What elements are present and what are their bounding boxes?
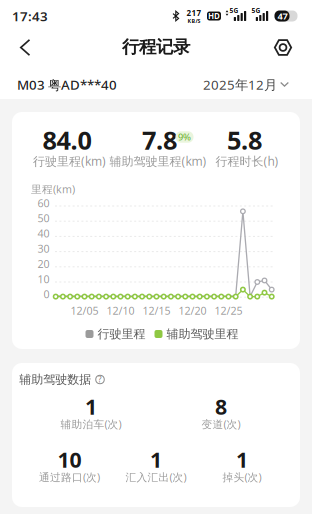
staticText: 行程时长(h) (215, 153, 278, 169)
staticText: HD (208, 11, 220, 21)
staticText: 行程记录 (122, 36, 190, 58)
staticText: 辅助驾驶里程(km) (109, 153, 206, 169)
staticText: 行驶里程(km) (33, 153, 106, 169)
staticText: 12/25 (214, 303, 242, 318)
staticText: 12/15 (142, 303, 170, 318)
staticText: 84.0 (42, 123, 91, 157)
staticText: 12/20 (178, 303, 206, 318)
staticText: 40 (37, 226, 49, 240)
button[interactable]: Help (95, 375, 105, 384)
staticText: 1 (150, 445, 162, 474)
staticText: 17:43 (12, 7, 48, 25)
staticText: 217 (186, 8, 201, 18)
staticText: 辅助泊车(次) (60, 417, 121, 431)
staticText: 1 (85, 392, 97, 421)
staticText: M03 粤AD***40 (17, 76, 117, 93)
staticText: 5.8 (227, 123, 262, 157)
staticText: 12/05 (70, 303, 98, 318)
staticText: 50 (37, 211, 49, 225)
staticText: 7.8 (142, 123, 177, 157)
staticText: 1 (236, 445, 248, 474)
staticText: 汇入汇出(次) (125, 470, 186, 484)
staticText: 8 (215, 392, 227, 421)
staticText: 47 (277, 10, 287, 22)
staticText: 12/10 (106, 303, 134, 318)
button[interactable]: 2025年12月 (203, 76, 289, 93)
staticText: 5G (229, 6, 238, 15)
staticText: KB/S (187, 17, 200, 24)
staticText: 里程(km) (31, 182, 75, 196)
staticText: 5G (251, 6, 260, 15)
button[interactable]: M03 粤AD***40 (17, 76, 117, 93)
staticText: 辅助驾驶数据 (19, 372, 91, 387)
staticText: 掉头(次) (222, 470, 261, 484)
staticText: 30 (37, 241, 49, 256)
staticText: 20 (37, 257, 49, 271)
staticText: 行驶里程 (97, 327, 145, 341)
staticText: 60 (37, 196, 49, 210)
staticText: 2025年12月 (203, 76, 277, 93)
staticText: 通过路口(次) (39, 470, 100, 484)
staticText: 辅助驾驶里程 (166, 327, 238, 341)
button[interactable]: Back (8, 29, 42, 65)
staticText: 0 (43, 287, 49, 301)
button[interactable]: Settings (266, 29, 300, 65)
staticText: ? (98, 374, 102, 385)
staticText: 10 (37, 272, 49, 286)
staticText: 变道(次) (201, 417, 240, 431)
staticText: 9% (178, 131, 191, 143)
staticText: 10 (57, 445, 81, 474)
